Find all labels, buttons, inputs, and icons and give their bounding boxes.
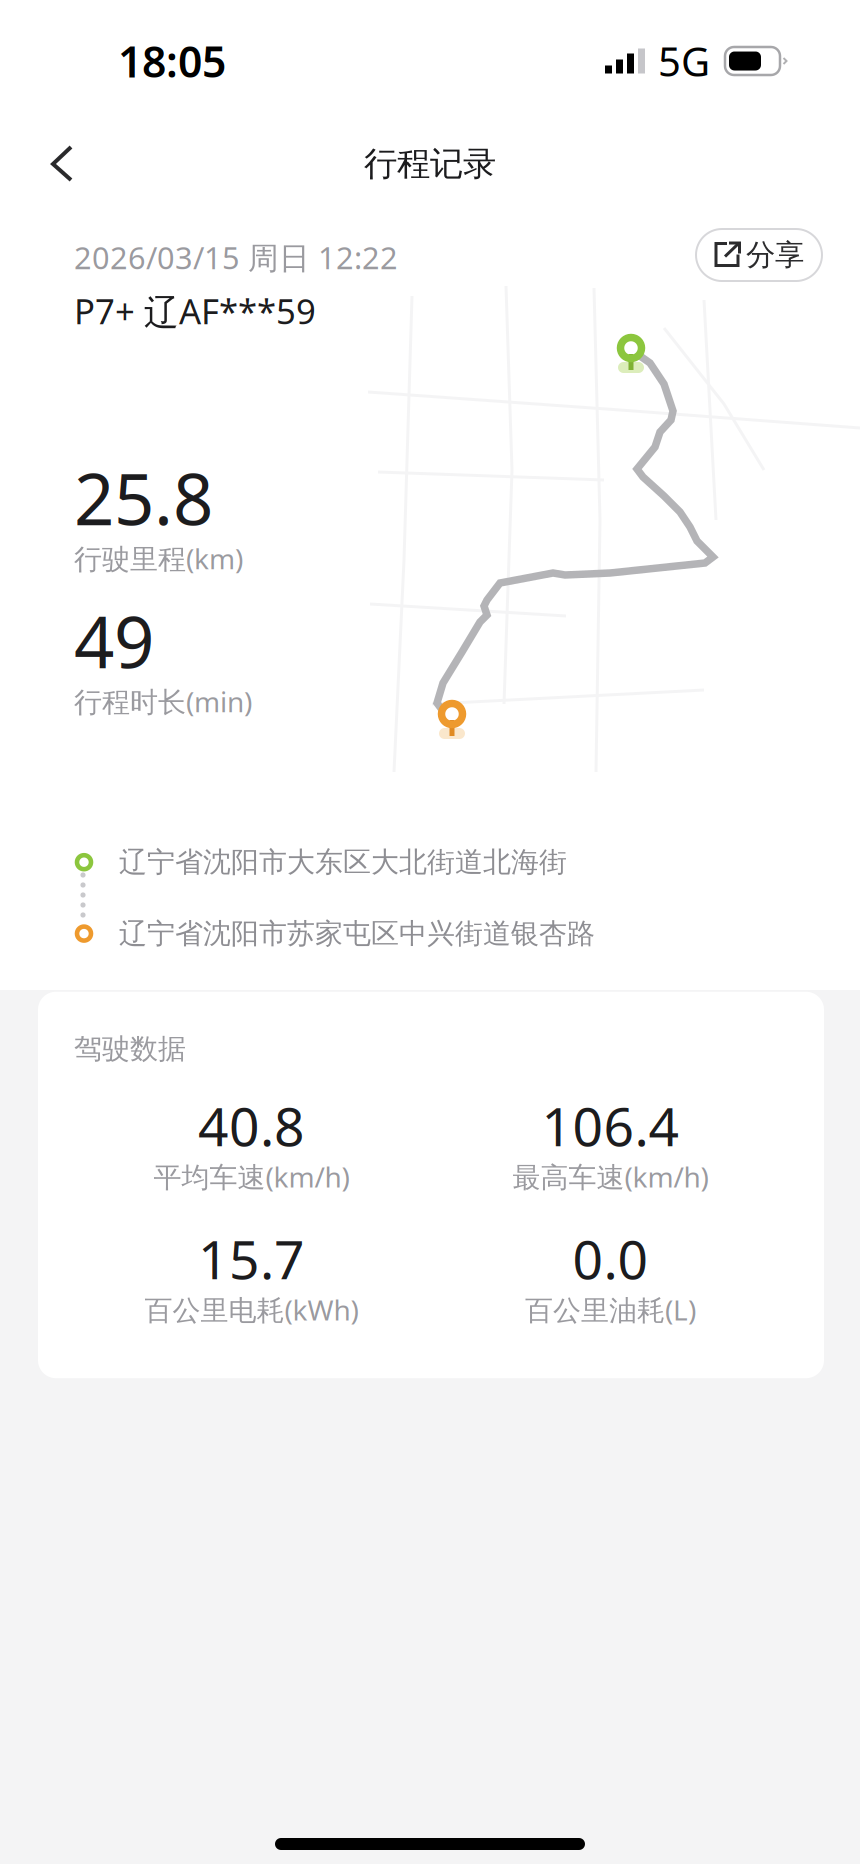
staticText: 25.8: [74, 451, 213, 545]
staticText: 5G: [658, 34, 710, 87]
staticText: 106.4: [541, 1090, 679, 1161]
staticText: 40.8: [198, 1090, 305, 1161]
button[interactable]: Back: [0, 129, 98, 199]
staticText: 分享: [746, 237, 804, 273]
staticText: 辽宁省沈阳市苏家屯区中兴街道银杏路: [119, 916, 595, 951]
staticText: 百公里油耗(L): [525, 1291, 696, 1328]
staticText: 辽宁省沈阳市大东区大北街道北海街: [119, 845, 567, 879]
staticText: 行驶里程(km): [74, 540, 243, 577]
staticText: 49: [74, 594, 154, 688]
staticText: 行程记录: [364, 143, 496, 184]
staticText: 2026/03/15 周日 12:22: [74, 237, 398, 278]
staticText: 行程时长(min): [74, 683, 252, 720]
staticText: 0.0: [572, 1223, 648, 1294]
staticText: 平均车速(km/h): [153, 1158, 349, 1195]
staticText: 驾驶数据: [74, 1032, 186, 1066]
staticText: 18:05: [118, 33, 226, 89]
staticText: P7+ 辽AF***59: [74, 288, 316, 334]
button[interactable]: 分享: [696, 229, 822, 281]
staticText: 15.7: [198, 1223, 305, 1294]
staticText: 最高车速(km/h): [512, 1158, 708, 1195]
staticText: 百公里电耗(kWh): [144, 1291, 358, 1328]
